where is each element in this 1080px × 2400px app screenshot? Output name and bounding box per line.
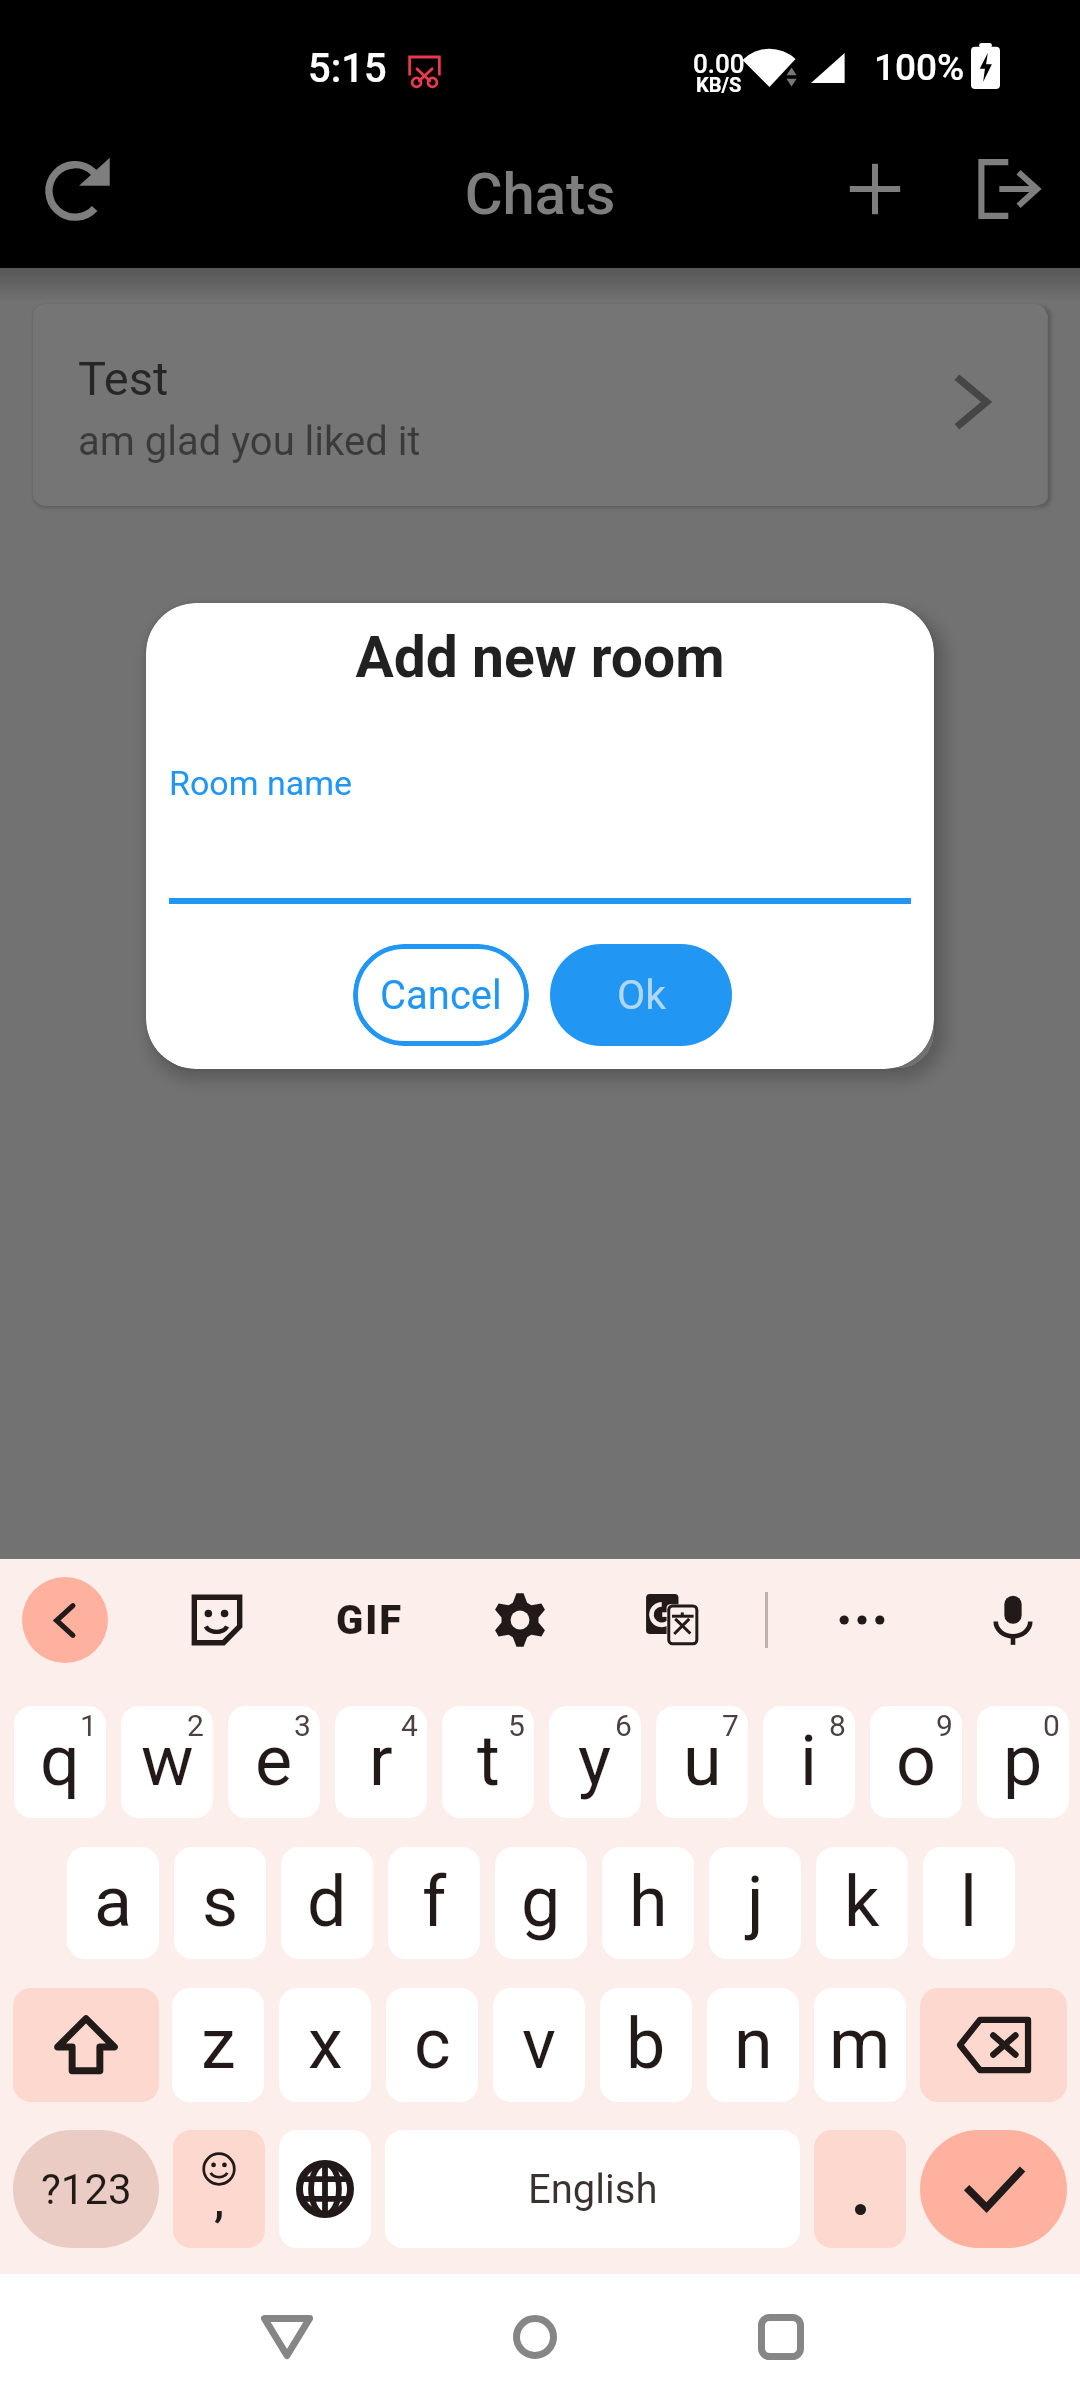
button[interactable]: g	[495, 1847, 587, 1959]
staticText: c	[414, 2003, 451, 2085]
button[interactable]: d	[281, 1847, 373, 1959]
button[interactable]: b	[600, 1988, 692, 2102]
button[interactable]: ?123	[13, 2130, 159, 2248]
button[interactable]: Shift	[13, 1988, 159, 2102]
button[interactable]: s	[174, 1847, 266, 1959]
button[interactable]: z	[172, 1988, 264, 2102]
staticText: e	[255, 1720, 293, 1802]
staticText: o	[896, 1720, 936, 1802]
staticText: r	[369, 1720, 393, 1802]
button[interactable]: m	[814, 1988, 906, 2102]
button[interactable]: i	[763, 1706, 855, 1818]
button[interactable]: r	[335, 1706, 427, 1818]
button[interactable]: Settings	[484, 1584, 556, 1656]
staticText: u	[683, 1720, 722, 1802]
staticText: v	[522, 2003, 556, 2085]
staticText: 1	[80, 1708, 97, 1743]
button[interactable]: Logout	[942, 124, 1072, 254]
staticText: Ok	[617, 971, 666, 1019]
button[interactable]: u	[656, 1706, 748, 1818]
button[interactable]: Cancel	[353, 944, 529, 1046]
staticText: w	[141, 1720, 194, 1802]
button[interactable]: GIF	[330, 1590, 410, 1650]
staticText: 100%	[874, 46, 965, 89]
staticText: 3	[294, 1708, 311, 1743]
button[interactable]: q	[14, 1706, 106, 1818]
staticText: a	[94, 1861, 133, 1943]
staticText: 5:15	[308, 45, 387, 92]
staticText: GIF	[336, 1597, 404, 1644]
button[interactable]: a	[67, 1847, 159, 1959]
button[interactable]: Period	[814, 2130, 906, 2248]
staticText: x	[308, 2003, 343, 2085]
staticText: t	[477, 1720, 500, 1802]
staticText: Add new room	[146, 624, 934, 691]
staticText: Chats	[0, 160, 1080, 228]
staticText: Cancel	[380, 972, 502, 1019]
staticText: KB/S	[696, 73, 742, 96]
staticText: Test	[78, 351, 169, 406]
staticText: 8	[829, 1708, 846, 1743]
button[interactable]: Test	[33, 304, 1047, 506]
button[interactable]: p	[977, 1706, 1069, 1818]
staticText: English	[528, 2166, 658, 2213]
staticText: m	[829, 2003, 891, 2085]
button[interactable]: Emoji and comma	[173, 2130, 265, 2248]
staticText: h	[629, 1861, 668, 1943]
button[interactable]: w	[121, 1706, 213, 1818]
button[interactable]: Translate	[636, 1584, 708, 1656]
staticText: y	[578, 1720, 612, 1802]
staticText: s	[202, 1861, 239, 1943]
button[interactable]: f	[388, 1847, 480, 1959]
button[interactable]: Change language	[279, 2130, 371, 2248]
button[interactable]: Stickers	[181, 1584, 253, 1656]
staticText: 7	[722, 1708, 739, 1743]
staticText: 5	[508, 1708, 525, 1743]
staticText: l	[960, 1861, 978, 1943]
staticText: 0.00	[693, 49, 745, 79]
button[interactable]: n	[707, 1988, 799, 2102]
staticText: am glad you liked it	[78, 418, 421, 465]
staticText: Room name	[169, 763, 353, 803]
button[interactable]: Done	[920, 2130, 1067, 2248]
staticText: z	[201, 2003, 236, 2085]
button[interactable]: Add room	[810, 124, 940, 254]
button[interactable]: e	[228, 1706, 320, 1818]
staticText: 9	[936, 1708, 953, 1743]
staticText: b	[626, 2003, 666, 2085]
button[interactable]: t	[442, 1706, 534, 1818]
staticText: f	[422, 1861, 447, 1943]
button[interactable]: v	[493, 1988, 585, 2102]
button[interactable]: Refresh	[14, 124, 144, 254]
staticText: q	[40, 1720, 80, 1802]
button[interactable]: English	[385, 2130, 800, 2248]
button[interactable]: Recent apps	[726, 2282, 836, 2392]
button[interactable]: Home	[480, 2282, 590, 2392]
button[interactable]: l	[923, 1847, 1015, 1959]
staticText: d	[307, 1861, 347, 1943]
staticText: n	[734, 2003, 773, 2085]
staticText: p	[1003, 1720, 1043, 1802]
staticText: 4	[401, 1708, 418, 1743]
staticText: g	[521, 1861, 561, 1943]
staticText: j	[747, 1861, 764, 1943]
button[interactable]: More options	[826, 1584, 898, 1656]
button[interactable]: Backspace	[920, 1988, 1067, 2102]
button[interactable]: y	[549, 1706, 641, 1818]
button[interactable]: Back	[232, 2282, 342, 2392]
staticText: 6	[615, 1708, 632, 1743]
staticText: 0	[1043, 1708, 1060, 1743]
staticText: 2	[187, 1708, 204, 1743]
button[interactable]: k	[816, 1847, 908, 1959]
button[interactable]: j	[709, 1847, 801, 1959]
button[interactable]: Ok	[550, 944, 732, 1046]
button[interactable]: Back	[22, 1577, 108, 1663]
button[interactable]: o	[870, 1706, 962, 1818]
staticText: i	[800, 1720, 818, 1802]
staticText: ?123	[41, 2165, 132, 2214]
button[interactable]: h	[602, 1847, 694, 1959]
staticText: k	[844, 1861, 880, 1943]
button[interactable]: Voice input	[977, 1584, 1049, 1656]
button[interactable]: c	[386, 1988, 478, 2102]
button[interactable]: x	[279, 1988, 371, 2102]
